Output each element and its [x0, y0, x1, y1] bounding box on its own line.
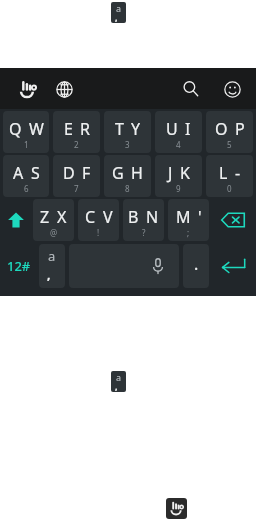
staticText: Q [9, 118, 22, 140]
staticText: 6 [24, 183, 29, 194]
staticText: 7 [74, 183, 79, 194]
staticText: N [146, 206, 159, 228]
staticText: O [215, 118, 228, 140]
staticText: a [116, 2, 122, 14]
button[interactable]: A [3, 155, 49, 197]
staticText: 1 [24, 139, 29, 150]
staticText: ; [187, 227, 190, 238]
staticText: I [185, 118, 191, 140]
button[interactable]: Emoji [217, 74, 247, 104]
button[interactable]: 12# [3, 244, 35, 288]
staticText: 4 [176, 139, 181, 150]
staticText: , [47, 266, 51, 282]
button[interactable]: M [168, 199, 209, 241]
staticText: U [166, 118, 178, 140]
staticText: W [29, 118, 44, 140]
button[interactable]: Backspace [211, 199, 255, 241]
staticText: B [128, 206, 139, 228]
button[interactable]: L [206, 155, 253, 197]
staticText: J [168, 162, 173, 184]
button[interactable]: D [53, 155, 100, 197]
staticText: 9 [176, 183, 181, 194]
staticText: 2 [74, 139, 79, 150]
staticText: P [235, 118, 245, 140]
staticText: ? [142, 227, 146, 238]
staticText: , [115, 11, 118, 23]
staticText: T [115, 118, 124, 140]
staticText: R [80, 118, 90, 140]
button[interactable]: Q [3, 111, 49, 153]
button[interactable]: E [53, 111, 100, 153]
staticText: D [63, 162, 75, 184]
staticText: G [112, 162, 124, 184]
button[interactable]: Handwriting [12, 74, 42, 104]
button[interactable]: . [183, 244, 209, 288]
button[interactable]: Shift [1, 199, 31, 241]
staticText: Y [131, 118, 141, 140]
button[interactable]: Z [33, 199, 74, 241]
button[interactable]: Space [69, 244, 179, 288]
staticText: ' [198, 206, 202, 228]
button[interactable]: Symbols [39, 244, 65, 288]
staticText: K [180, 162, 190, 184]
button[interactable]: T [104, 111, 151, 153]
staticText: C [85, 206, 96, 228]
staticText: V [103, 206, 113, 228]
staticText: a [48, 247, 56, 265]
staticText: ! [97, 227, 100, 238]
staticText: , [115, 380, 118, 392]
staticText: L [219, 162, 228, 184]
staticText: A [13, 162, 24, 184]
button[interactable]: Input method [111, 2, 126, 23]
staticText: E [64, 118, 73, 140]
staticText: 3 [125, 139, 130, 150]
button[interactable]: U [155, 111, 202, 153]
staticText: 5 [227, 139, 232, 150]
button[interactable]: Handwriting input [166, 498, 187, 519]
staticText: . [194, 253, 199, 275]
button[interactable]: B [123, 199, 164, 241]
staticText: 12# [7, 257, 31, 275]
staticText: M [176, 206, 191, 228]
button[interactable]: Search [176, 74, 206, 104]
button[interactable]: Enter [211, 244, 255, 288]
button[interactable]: G [104, 155, 151, 197]
button[interactable]: O [206, 111, 253, 153]
staticText: a [116, 371, 122, 383]
button[interactable]: J [155, 155, 202, 197]
button[interactable]: C [78, 199, 119, 241]
staticText: @ [50, 227, 58, 238]
button[interactable]: Language [49, 74, 79, 104]
staticText: Z [40, 206, 50, 228]
staticText: 8 [125, 183, 130, 194]
staticText: F [82, 162, 91, 184]
staticText: 0 [227, 183, 232, 194]
staticText: - [235, 162, 241, 184]
staticText: S [31, 162, 40, 184]
button[interactable]: Input method [111, 371, 126, 392]
staticText: H [131, 162, 143, 184]
staticText: X [57, 206, 67, 228]
